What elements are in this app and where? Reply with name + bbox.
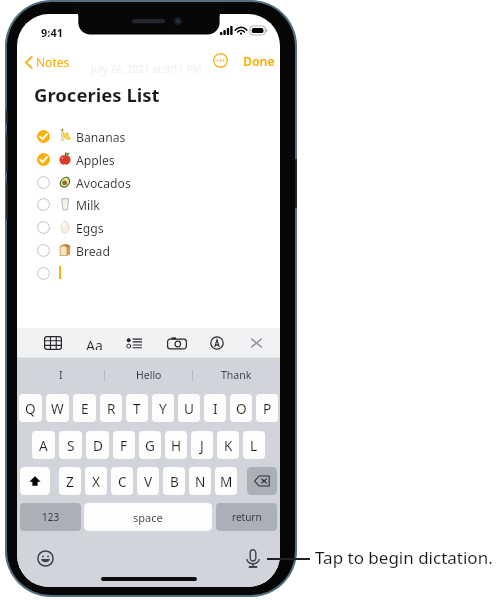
staticText: S [67, 436, 75, 455]
staticText: A [39, 436, 48, 455]
staticText: Thank [221, 368, 252, 382]
button[interactable]: H [165, 431, 187, 459]
button[interactable]: W [46, 394, 69, 422]
staticText: I [59, 368, 63, 382]
button[interactable]: R [100, 394, 122, 422]
staticText: W [51, 399, 64, 418]
button[interactable]: Table [44, 336, 62, 350]
button[interactable]: Text format [85, 336, 103, 350]
button[interactable]: J [191, 431, 213, 459]
button[interactable]: X [85, 467, 107, 495]
staticText: Notes [36, 54, 70, 70]
staticText: 123 [42, 510, 60, 524]
staticText: Bananas [76, 129, 126, 146]
staticText: Groceries List [34, 82, 160, 107]
button[interactable]: 123 [20, 503, 81, 531]
staticText: T [133, 399, 141, 418]
button[interactable]: V [137, 467, 159, 495]
staticText: Avocados [76, 175, 131, 192]
staticText: space [133, 510, 163, 525]
staticText: N [195, 472, 206, 491]
button[interactable]: C [111, 467, 133, 495]
button[interactable]: Camera [167, 336, 187, 350]
button[interactable]: Done [241, 51, 277, 72]
button[interactable]: space [84, 503, 212, 531]
staticText: Y [159, 399, 167, 418]
staticText: P [263, 399, 272, 418]
staticText: G [145, 436, 155, 455]
staticText: R [107, 399, 116, 418]
staticText: Tap to begin dictation. [315, 546, 493, 569]
button[interactable]: Avocados [33, 173, 173, 191]
staticText: Milk [76, 197, 100, 214]
button[interactable]: Dictation [246, 549, 260, 569]
staticText: M [220, 472, 233, 491]
button[interactable]: Milk [33, 195, 173, 213]
staticText: return [232, 510, 262, 524]
button[interactable]: Notes [22, 52, 73, 72]
button[interactable]: Markup [209, 336, 225, 350]
staticText: Hello [136, 368, 162, 382]
staticText: B [170, 472, 179, 491]
staticText: J [200, 436, 204, 455]
button[interactable]: D [86, 431, 109, 459]
button[interactable]: K [217, 431, 239, 459]
staticText: X [92, 472, 100, 491]
button[interactable]: Apples [33, 150, 173, 168]
button[interactable]: M [215, 467, 237, 495]
staticText: I [213, 399, 218, 418]
staticText: K [224, 436, 233, 455]
staticText: O [236, 399, 247, 418]
button[interactable]: Hello [105, 368, 192, 382]
staticText: D [93, 436, 103, 455]
button[interactable]: Thank [193, 368, 280, 382]
button[interactable]: Checklist [126, 336, 142, 350]
staticText: Eggs [76, 220, 104, 237]
staticText: L [250, 436, 258, 455]
button[interactable]: B [163, 467, 185, 495]
button[interactable]: Bread [33, 241, 173, 259]
button[interactable]: L [243, 431, 265, 459]
button[interactable]: T [126, 394, 148, 422]
button[interactable]: Shift [20, 467, 50, 495]
button[interactable]: Y [152, 394, 174, 422]
button[interactable]: S [59, 431, 82, 459]
button[interactable]: P [256, 394, 278, 422]
staticText: U [184, 399, 194, 418]
button[interactable]: U [178, 394, 200, 422]
staticText: July 24, 2021 at 9:11 PM [91, 62, 202, 76]
button[interactable]: G [139, 431, 161, 459]
staticText: Z [66, 472, 74, 491]
button[interactable]: return [216, 503, 277, 531]
button[interactable]: Z [59, 467, 81, 495]
staticText: Bread [76, 243, 110, 260]
button[interactable]: N [189, 467, 211, 495]
button[interactable]: More options [213, 53, 228, 68]
staticText: 9:41 [41, 25, 63, 40]
staticText: C [118, 472, 127, 491]
staticText: Done [243, 53, 275, 70]
button[interactable]: E [73, 394, 96, 422]
button[interactable]: Backspace [247, 467, 277, 495]
button[interactable]: Emoji keyboard [37, 550, 54, 567]
staticText: Aa [86, 336, 103, 350]
button[interactable]: O [230, 394, 252, 422]
button[interactable]: F [113, 431, 135, 459]
button[interactable]: Q [19, 394, 42, 422]
button[interactable] [33, 264, 173, 282]
button[interactable]: I [17, 368, 104, 382]
staticText: E [81, 399, 89, 418]
staticText: V [144, 472, 153, 491]
staticText: F [120, 436, 128, 455]
staticText: Apples [76, 152, 115, 169]
button[interactable]: I [204, 394, 226, 422]
button[interactable]: Bananas [33, 127, 173, 145]
button[interactable]: A [32, 431, 55, 459]
staticText: H [171, 436, 182, 455]
button[interactable]: Close keyboard [249, 336, 264, 350]
button[interactable]: Eggs [33, 218, 173, 236]
staticText: Q [25, 399, 36, 418]
